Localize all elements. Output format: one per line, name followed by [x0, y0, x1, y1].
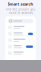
button[interactable]: Search result: [8, 38, 33, 43]
staticText: Smart search: [7, 1, 33, 7]
button[interactable]: Search result: [8, 25, 33, 30]
button[interactable]: Search result: [8, 50, 33, 56]
button[interactable]: Search result: [8, 44, 33, 49]
button[interactable]: Search result: [8, 31, 33, 37]
staticText: need in seconds: [8, 11, 32, 15]
staticText: Find the people you: [5, 8, 35, 11]
button[interactable]: Search: [7, 19, 33, 23]
